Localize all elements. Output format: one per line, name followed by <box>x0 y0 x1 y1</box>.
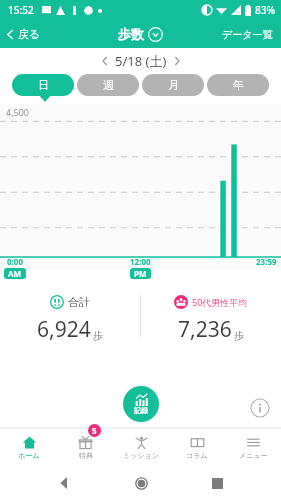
staticText: 5 <box>92 425 97 436</box>
staticText: 12:00 <box>130 256 151 267</box>
button[interactable]: Information <box>249 397 271 419</box>
button[interactable]: メニュー <box>225 428 281 466</box>
button[interactable]: 月 <box>142 74 204 96</box>
button[interactable]: Back <box>52 471 76 495</box>
button[interactable]: 日 <box>12 74 74 96</box>
button[interactable]: 戻る <box>0 23 49 45</box>
staticText: 5/18 (土) <box>115 52 167 70</box>
button[interactable]: 特典 <box>57 428 113 466</box>
button[interactable]: ミッション <box>113 428 169 466</box>
button[interactable]: 年 <box>207 74 269 96</box>
staticText: メニュー <box>239 451 268 460</box>
staticText: 83% <box>255 3 275 17</box>
staticText: 0:00 <box>7 256 23 267</box>
staticText: 日 <box>38 78 49 92</box>
button[interactable]: 記録 <box>123 386 159 422</box>
button[interactable]: 歩数 <box>114 22 167 46</box>
staticText: 年 <box>233 78 244 92</box>
button[interactable]: 週 <box>77 74 139 96</box>
button[interactable]: Previous day <box>95 51 115 71</box>
staticText: 合計 <box>68 295 90 309</box>
staticText: 50代男性平均 <box>192 296 248 308</box>
staticText: PM <box>134 268 147 279</box>
staticText: 歩 <box>234 329 244 342</box>
button[interactable]: データ一覧 <box>214 24 281 45</box>
staticText: 記録 <box>134 406 148 415</box>
staticText: コラム <box>186 451 208 460</box>
staticText: データ一覧 <box>222 28 273 41</box>
button[interactable]: ホーム <box>0 428 57 466</box>
button[interactable]: Recent apps <box>206 472 229 495</box>
button[interactable]: Next day <box>167 51 187 71</box>
staticText: 月 <box>168 78 179 92</box>
button[interactable]: Home <box>129 471 154 496</box>
staticText: AM <box>8 268 22 279</box>
button[interactable]: コラム <box>169 428 225 466</box>
staticText: 歩 <box>93 329 103 342</box>
staticText: 特典 <box>79 451 93 460</box>
staticText: 週 <box>103 78 114 92</box>
staticText: 戻る <box>18 27 41 41</box>
staticText: 23:59 <box>256 256 277 267</box>
staticText: ホーム <box>18 451 40 460</box>
staticText: 4,500 <box>6 106 30 118</box>
staticText: ミッション <box>123 451 159 460</box>
staticText: 歩数 <box>118 26 144 42</box>
staticText: 15:52 <box>8 3 34 17</box>
staticText: 6,924 <box>37 315 91 344</box>
staticText: 7,236 <box>178 315 232 344</box>
